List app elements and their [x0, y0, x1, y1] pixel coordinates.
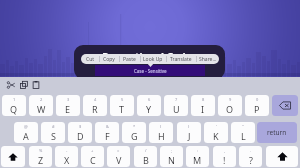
staticText: Share… [199, 56, 217, 63]
staticText: B [143, 154, 149, 166]
button[interactable]: $ [68, 122, 92, 143]
staticText: J [188, 130, 191, 142]
staticText: Promotional Codes [74, 50, 225, 64]
button[interactable]: 9 [218, 95, 242, 116]
button[interactable]: Paste [30, 79, 41, 90]
staticText: . [250, 148, 252, 153]
button[interactable]: * [122, 122, 146, 143]
button[interactable]: 3 [56, 95, 80, 116]
staticText: ! [223, 154, 226, 166]
button[interactable]: 4 [83, 95, 107, 116]
staticText: Q [10, 103, 18, 115]
staticText: / [145, 148, 147, 153]
staticText: ( [160, 124, 162, 129]
staticText: X [64, 154, 70, 166]
button[interactable]: 5 [110, 95, 134, 116]
staticText: * [133, 124, 136, 129]
staticText: L [241, 130, 246, 142]
staticText: 2 [40, 97, 43, 102]
button[interactable]: 1 [2, 95, 26, 116]
staticText: ; [171, 148, 173, 153]
staticText: Z [38, 154, 44, 166]
button[interactable]: return [257, 122, 297, 143]
button[interactable]: Share… [196, 54, 219, 64]
button[interactable]: Look Up [140, 54, 166, 64]
staticText: Case - Sensitive [134, 68, 167, 74]
button[interactable]: Shift [266, 146, 298, 167]
staticText: Cut [86, 56, 95, 63]
button[interactable]: Copy [99, 54, 119, 64]
button[interactable]: 7 [164, 95, 188, 116]
staticText: " [242, 124, 244, 129]
staticText: Y [146, 103, 152, 115]
button[interactable]: Copy [18, 79, 29, 90]
button[interactable]: @ [14, 122, 38, 143]
staticText: P [254, 103, 260, 115]
button[interactable]: ( [149, 122, 173, 143]
button[interactable]: Paste [119, 54, 140, 64]
staticText: Translate [170, 56, 192, 63]
button[interactable]: Cut [5, 79, 16, 90]
button[interactable]: & [95, 122, 119, 143]
button[interactable]: / [134, 146, 157, 167]
staticText: Look Up [143, 56, 163, 63]
staticText: D [77, 130, 84, 142]
staticText: C [90, 154, 96, 166]
button[interactable]: " [231, 122, 255, 143]
staticText: = [117, 148, 120, 153]
staticText: : [197, 148, 199, 153]
staticText: G [131, 130, 138, 142]
staticText: I [201, 103, 205, 115]
button[interactable]: 2 [29, 95, 53, 116]
button[interactable]: 6 [137, 95, 161, 116]
staticText: return [267, 128, 287, 137]
button[interactable]: - [55, 146, 78, 167]
staticText: Copy [103, 56, 115, 63]
button[interactable]: # [41, 122, 65, 143]
staticText: ) [188, 124, 190, 129]
staticText: 5 [121, 97, 124, 102]
staticText: K [213, 130, 219, 142]
staticText: 4 [94, 97, 97, 102]
staticText: H [158, 130, 165, 142]
staticText: A [23, 130, 29, 142]
staticText: # [52, 124, 55, 129]
staticText: M [193, 154, 202, 166]
button[interactable]: Shift [1, 146, 25, 167]
staticText: 0 [256, 97, 259, 102]
button[interactable]: = [107, 146, 130, 167]
staticText: S [51, 130, 56, 142]
button[interactable]: ) [177, 122, 201, 143]
staticText: ? [249, 154, 253, 166]
staticText: 7 [175, 97, 178, 102]
staticText: W [37, 103, 46, 115]
button[interactable]: 0 [245, 95, 269, 116]
button[interactable]: : [186, 146, 209, 167]
staticText: N [168, 154, 175, 166]
staticText: - [66, 148, 68, 153]
staticText: + [91, 148, 94, 153]
button[interactable]: Backspace [272, 95, 298, 116]
staticText: % [39, 148, 43, 153]
button[interactable]: . [239, 146, 262, 167]
button[interactable]: + [81, 146, 104, 167]
staticText: R [92, 103, 98, 115]
staticText: & [106, 124, 109, 129]
button[interactable]: Translate [166, 54, 196, 64]
staticText: Paste [123, 56, 136, 63]
button[interactable]: , [213, 146, 236, 167]
staticText: F [105, 130, 110, 142]
staticText: U [173, 103, 180, 115]
button[interactable]: ; [160, 146, 183, 167]
staticText: 9 [229, 97, 232, 102]
button[interactable]: ' [204, 122, 228, 143]
staticText: E [65, 103, 71, 115]
button[interactable]: 8 [191, 95, 215, 116]
button[interactable]: % [29, 146, 52, 167]
staticText: 6 [148, 97, 151, 102]
staticText: T [119, 103, 125, 115]
button[interactable]: Cut [81, 54, 99, 64]
staticText: 1 [13, 97, 16, 102]
staticText: ' [216, 124, 217, 129]
staticText: V [116, 154, 122, 166]
